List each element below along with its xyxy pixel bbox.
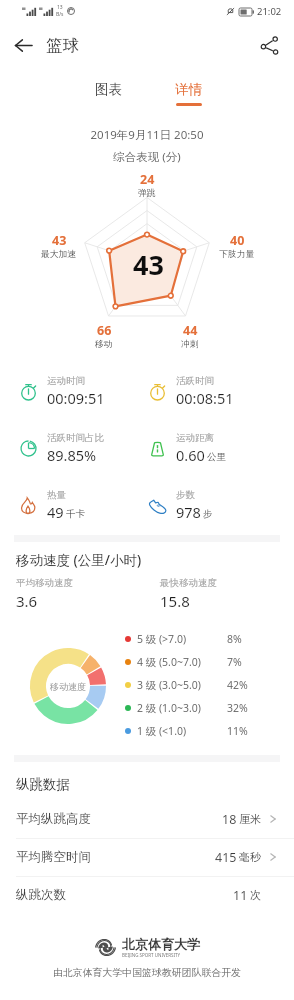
staticText: 1 级 (<1.0) [137,724,187,738]
staticText: B/s [56,11,64,18]
staticText: 49 [47,502,64,522]
staticText: 15.8 [160,591,190,611]
staticText: 最快移动速度 [160,577,217,589]
staticText: 7% [227,655,242,669]
button[interactable]: 图表 [78,72,138,108]
staticText: 4 级 (5.0~7.0) [137,655,201,669]
staticText: 公里 [207,451,226,463]
staticText: 42% [227,678,248,692]
button[interactable]: 平均腾空时间 [0,838,294,876]
staticText: 毫秒 [239,850,261,864]
staticText: 步数 [176,489,195,501]
staticText: BEIJING SPORT UNIVERSITY [122,952,181,958]
staticText: 移动速度 (公里/小时) [16,551,142,569]
staticText: 32% [227,701,248,715]
button[interactable]: 运动时间 [17,368,149,414]
staticText: 平均纵跳高度 [16,811,91,827]
staticText: 平均腾空时间 [16,849,91,865]
staticText: 移动速度 [50,681,86,692]
staticText: 下肢力量 [219,249,255,260]
staticText: 5 级 (>7.0) [137,632,187,646]
staticText: 44 [183,322,198,339]
staticText: 厘米 [239,812,261,826]
staticText: 篮球 [46,35,79,56]
button[interactable]: 步数 [146,482,278,528]
staticText: 详情 [175,81,202,98]
staticText: 978 [176,502,201,522]
button[interactable]: 详情 [158,72,218,108]
staticText: 24 [140,171,155,188]
staticText: 43 [52,232,67,249]
staticText: 3.6 [16,591,38,611]
staticText: 0.60 [176,445,205,465]
staticText: 415 [215,849,237,866]
staticText: 步 [203,508,213,520]
staticText: 2 级 (1.0~3.0) [137,701,201,715]
staticText: 移动 [95,339,113,350]
button[interactable]: Share [252,28,286,62]
staticText: 11 [233,887,248,904]
staticText: 平均移动速度 [16,577,73,589]
staticText: 21:02 [257,5,282,18]
staticText: 89.85% [47,445,97,465]
staticText: 11% [227,724,248,738]
button[interactable]: 活跃时间 [146,368,278,414]
staticText: 次 [250,888,261,902]
staticText: 冲刺 [181,339,199,350]
button[interactable]: 活跃时间占比 [17,425,149,471]
button[interactable]: 运动距离 [146,425,278,471]
staticText: 北京体育大学 [122,936,200,952]
staticText: 运动时间 [47,375,85,387]
staticText: 43 [133,246,164,283]
staticText: 千卡 [66,508,85,520]
staticText: 热量 [47,489,66,501]
button[interactable]: Back [6,28,40,62]
staticText: 00:08:51 [176,388,234,408]
button[interactable]: 热量 [17,482,149,528]
staticText: 8% [227,632,242,646]
button[interactable]: 纵跳次数 [0,876,294,914]
staticText: 活跃时间 [176,375,214,387]
staticText: 综合表现 (分) [0,149,294,165]
staticText: 00:09:51 [47,388,105,408]
staticText: 40 [230,232,245,249]
staticText: 13 [57,4,63,11]
staticText: 2019年9月11日 20:50 [0,127,294,143]
staticText: 运动距离 [176,432,214,444]
button[interactable]: 平均纵跳高度 [0,800,294,838]
staticText: 66 [97,322,112,339]
staticText: 图表 [95,81,122,98]
staticText: 18 [222,811,237,828]
staticText: 3 级 (3.0~5.0) [137,678,201,692]
staticText: 活跃时间占比 [47,432,104,444]
staticText: 由北京体育大学中国篮球教研团队联合开发 [0,966,294,978]
staticText: 弹跳 [138,188,156,199]
staticText: 纵跳数据 [16,776,70,793]
staticText: 最大加速 [41,249,77,260]
staticText: 纵跳次数 [16,887,66,903]
